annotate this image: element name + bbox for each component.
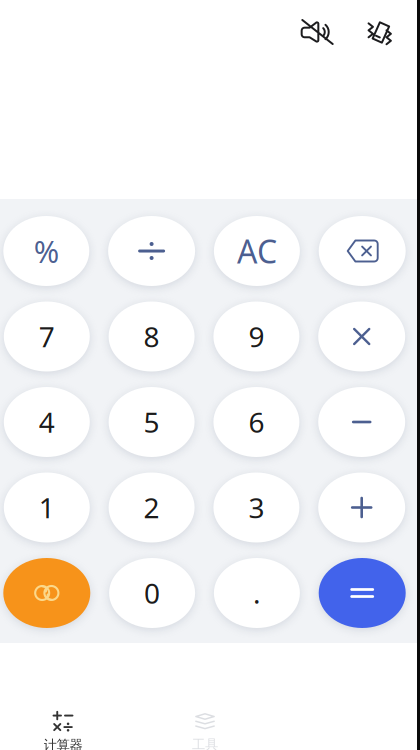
staticText: AC [237,230,277,272]
button[interactable]: Plus [318,472,405,542]
button[interactable]: 5 [109,387,195,457]
staticText: 7 [39,318,55,355]
button[interactable]: Divide [108,216,195,286]
button[interactable]: 6 [213,387,299,457]
button[interactable]: Minus [318,387,405,457]
staticText: 4 [39,403,55,441]
staticText: 6 [248,403,264,441]
button[interactable]: Equals [319,558,406,628]
staticText: 0 [144,574,160,612]
button[interactable]: Sound off [293,12,342,52]
button[interactable]: Backspace [319,216,406,286]
button[interactable]: 工具 [142,709,268,750]
button[interactable]: 4 [4,387,90,457]
staticText: 9 [248,318,264,355]
staticText: % [34,231,59,271]
staticText: . [253,574,261,612]
staticText: 8 [144,318,160,355]
button[interactable]: 3 [213,472,299,542]
button[interactable]: 7 [4,301,90,371]
staticText: 2 [144,489,160,526]
button[interactable]: 8 [109,301,195,371]
button[interactable]: 9 [213,301,299,371]
button[interactable]: 计算器 [0,709,126,750]
button[interactable]: 1 [4,472,90,542]
staticText: 3 [248,489,264,526]
button[interactable]: AC [214,216,300,286]
staticText: 1 [39,489,55,526]
button[interactable]: 2 [109,472,195,542]
button[interactable]: Swap units [3,558,90,628]
staticText: 5 [144,403,160,441]
staticText: 计算器 [43,737,82,750]
button[interactable]: % [3,216,89,286]
button[interactable]: Multiply [318,301,405,371]
button[interactable]: . [214,558,300,628]
button[interactable]: 0 [109,558,195,628]
button[interactable]: Vibration [360,12,399,52]
staticText: 工具 [192,736,218,750]
